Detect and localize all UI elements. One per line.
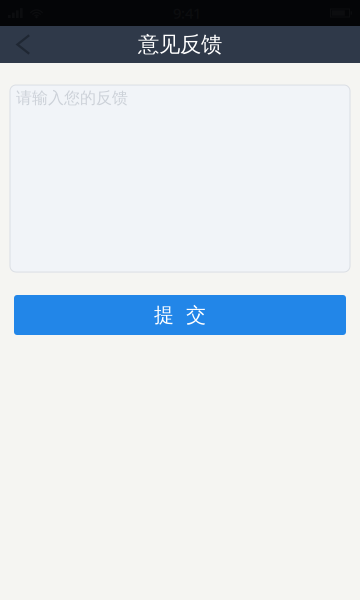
- staticText: 提 交: [154, 303, 206, 327]
- button[interactable]: Back: [0, 26, 44, 63]
- staticText: 请输入您的反馈: [16, 88, 128, 108]
- staticText: 意见反馈: [138, 31, 222, 58]
- button[interactable]: 提 交: [14, 295, 346, 335]
